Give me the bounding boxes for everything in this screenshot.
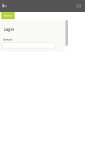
- button[interactable]: Home: [0, 0, 11, 12]
- staticText: Login: [3, 27, 14, 32]
- button[interactable]: Home: [1, 12, 15, 19]
- button[interactable]: [3, 43, 55, 48]
- button[interactable]: Menu: [75, 0, 85, 12]
- staticText: Home: [3, 14, 12, 17]
- staticText: Email: [3, 38, 12, 41]
